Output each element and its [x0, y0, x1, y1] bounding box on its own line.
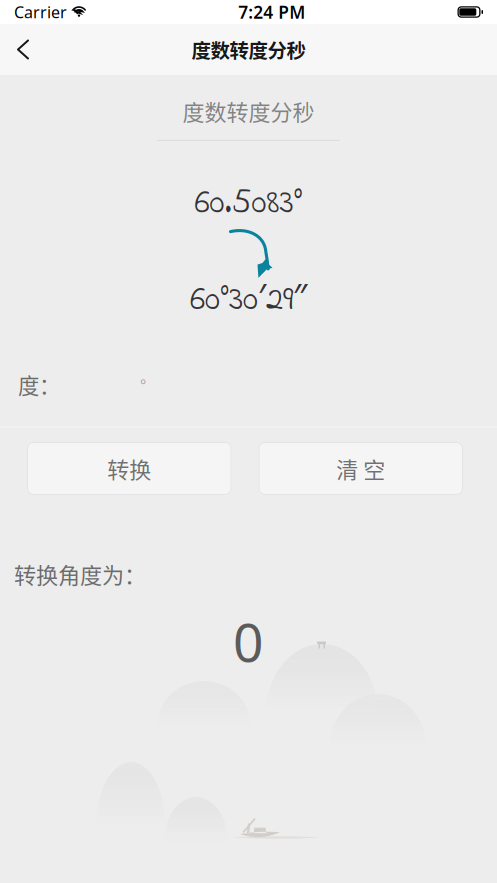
staticText: 60°30′29″	[190, 272, 307, 326]
button[interactable]: 转换	[27, 442, 231, 495]
staticText: °	[140, 375, 146, 394]
staticText: 度数转度分秒	[182, 95, 314, 127]
button[interactable]: 清 空	[258, 442, 463, 495]
staticText: 度：	[18, 369, 60, 400]
staticText: Carrier	[14, 1, 67, 23]
staticText: 清 空	[336, 452, 385, 484]
staticText: 度数转度分秒	[191, 35, 305, 64]
staticText: 转换角度为：	[14, 558, 146, 590]
button[interactable]: Back	[0, 25, 44, 73]
staticText: 0	[233, 606, 264, 677]
staticText: 7:24 PM	[238, 0, 305, 23]
staticText: 转换	[107, 452, 151, 484]
staticText: 60.5083°	[194, 179, 302, 229]
